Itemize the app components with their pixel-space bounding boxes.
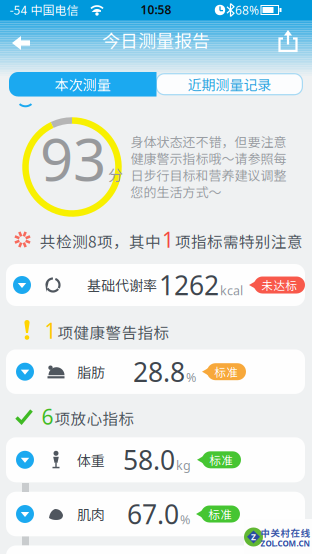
staticText: % bbox=[186, 369, 196, 386]
staticText: 近期测量记录 bbox=[187, 74, 271, 94]
button[interactable]: 近期测量记录 bbox=[156, 74, 302, 95]
staticText: 1 bbox=[44, 316, 56, 345]
staticText: 分 bbox=[108, 164, 123, 185]
staticText: 本次测量 bbox=[55, 74, 111, 94]
staticText: kcal bbox=[220, 282, 243, 299]
staticText: 未达标 bbox=[261, 277, 297, 293]
button[interactable]: 脂肪 bbox=[6, 349, 305, 394]
staticText: 6 bbox=[41, 402, 53, 431]
staticText: 脂肪 bbox=[77, 362, 105, 382]
staticText: Z bbox=[251, 531, 256, 543]
staticText: ZOL.COM.CN bbox=[260, 538, 310, 549]
staticText: 中关村在线 bbox=[260, 526, 310, 539]
staticText: 肌肉 bbox=[77, 504, 105, 524]
button[interactable]: 基础代谢率 bbox=[6, 264, 305, 306]
staticText: 健康警示指标哦～请参照每 bbox=[130, 149, 286, 167]
staticText: 身体状态还不错，但要注意 bbox=[130, 132, 286, 151]
staticText: % bbox=[180, 511, 190, 528]
button[interactable]: 本次测量 bbox=[9, 72, 156, 96]
staticText: 标准 bbox=[209, 451, 233, 468]
staticText: 68% bbox=[235, 2, 259, 18]
staticText: -54 中国电信 bbox=[9, 1, 78, 18]
button[interactable]: 体重 bbox=[6, 437, 305, 482]
staticText: 93 bbox=[40, 119, 106, 198]
staticText: 基础代谢率 bbox=[87, 275, 157, 295]
staticText: 标准 bbox=[208, 506, 232, 522]
staticText: 28.8 bbox=[133, 354, 185, 390]
button[interactable]: Back bbox=[5, 30, 35, 56]
staticText: 共检测8项，其中 bbox=[40, 230, 161, 252]
staticText: 项放心指标 bbox=[54, 407, 134, 429]
staticText: 10:58 bbox=[140, 1, 171, 18]
staticText: 您的生活方式～ bbox=[130, 182, 221, 201]
button[interactable]: 肌肉 bbox=[6, 492, 305, 536]
staticText: 1 bbox=[162, 225, 174, 254]
staticText: 今日测量报告 bbox=[102, 27, 210, 53]
staticText: 项健康警告指标 bbox=[57, 321, 169, 343]
staticText: 项指标需特别注意 bbox=[175, 230, 303, 252]
staticText: 标准 bbox=[214, 363, 238, 380]
staticText: 58.0 bbox=[123, 442, 175, 478]
staticText: 日步行目标和营养建议调整 bbox=[130, 165, 286, 184]
button[interactable]: Share bbox=[275, 28, 301, 54]
staticText: kg bbox=[176, 457, 191, 474]
staticText: 1262 bbox=[159, 267, 219, 303]
staticText: 67.0 bbox=[127, 496, 179, 532]
staticText: 体重 bbox=[77, 450, 105, 470]
